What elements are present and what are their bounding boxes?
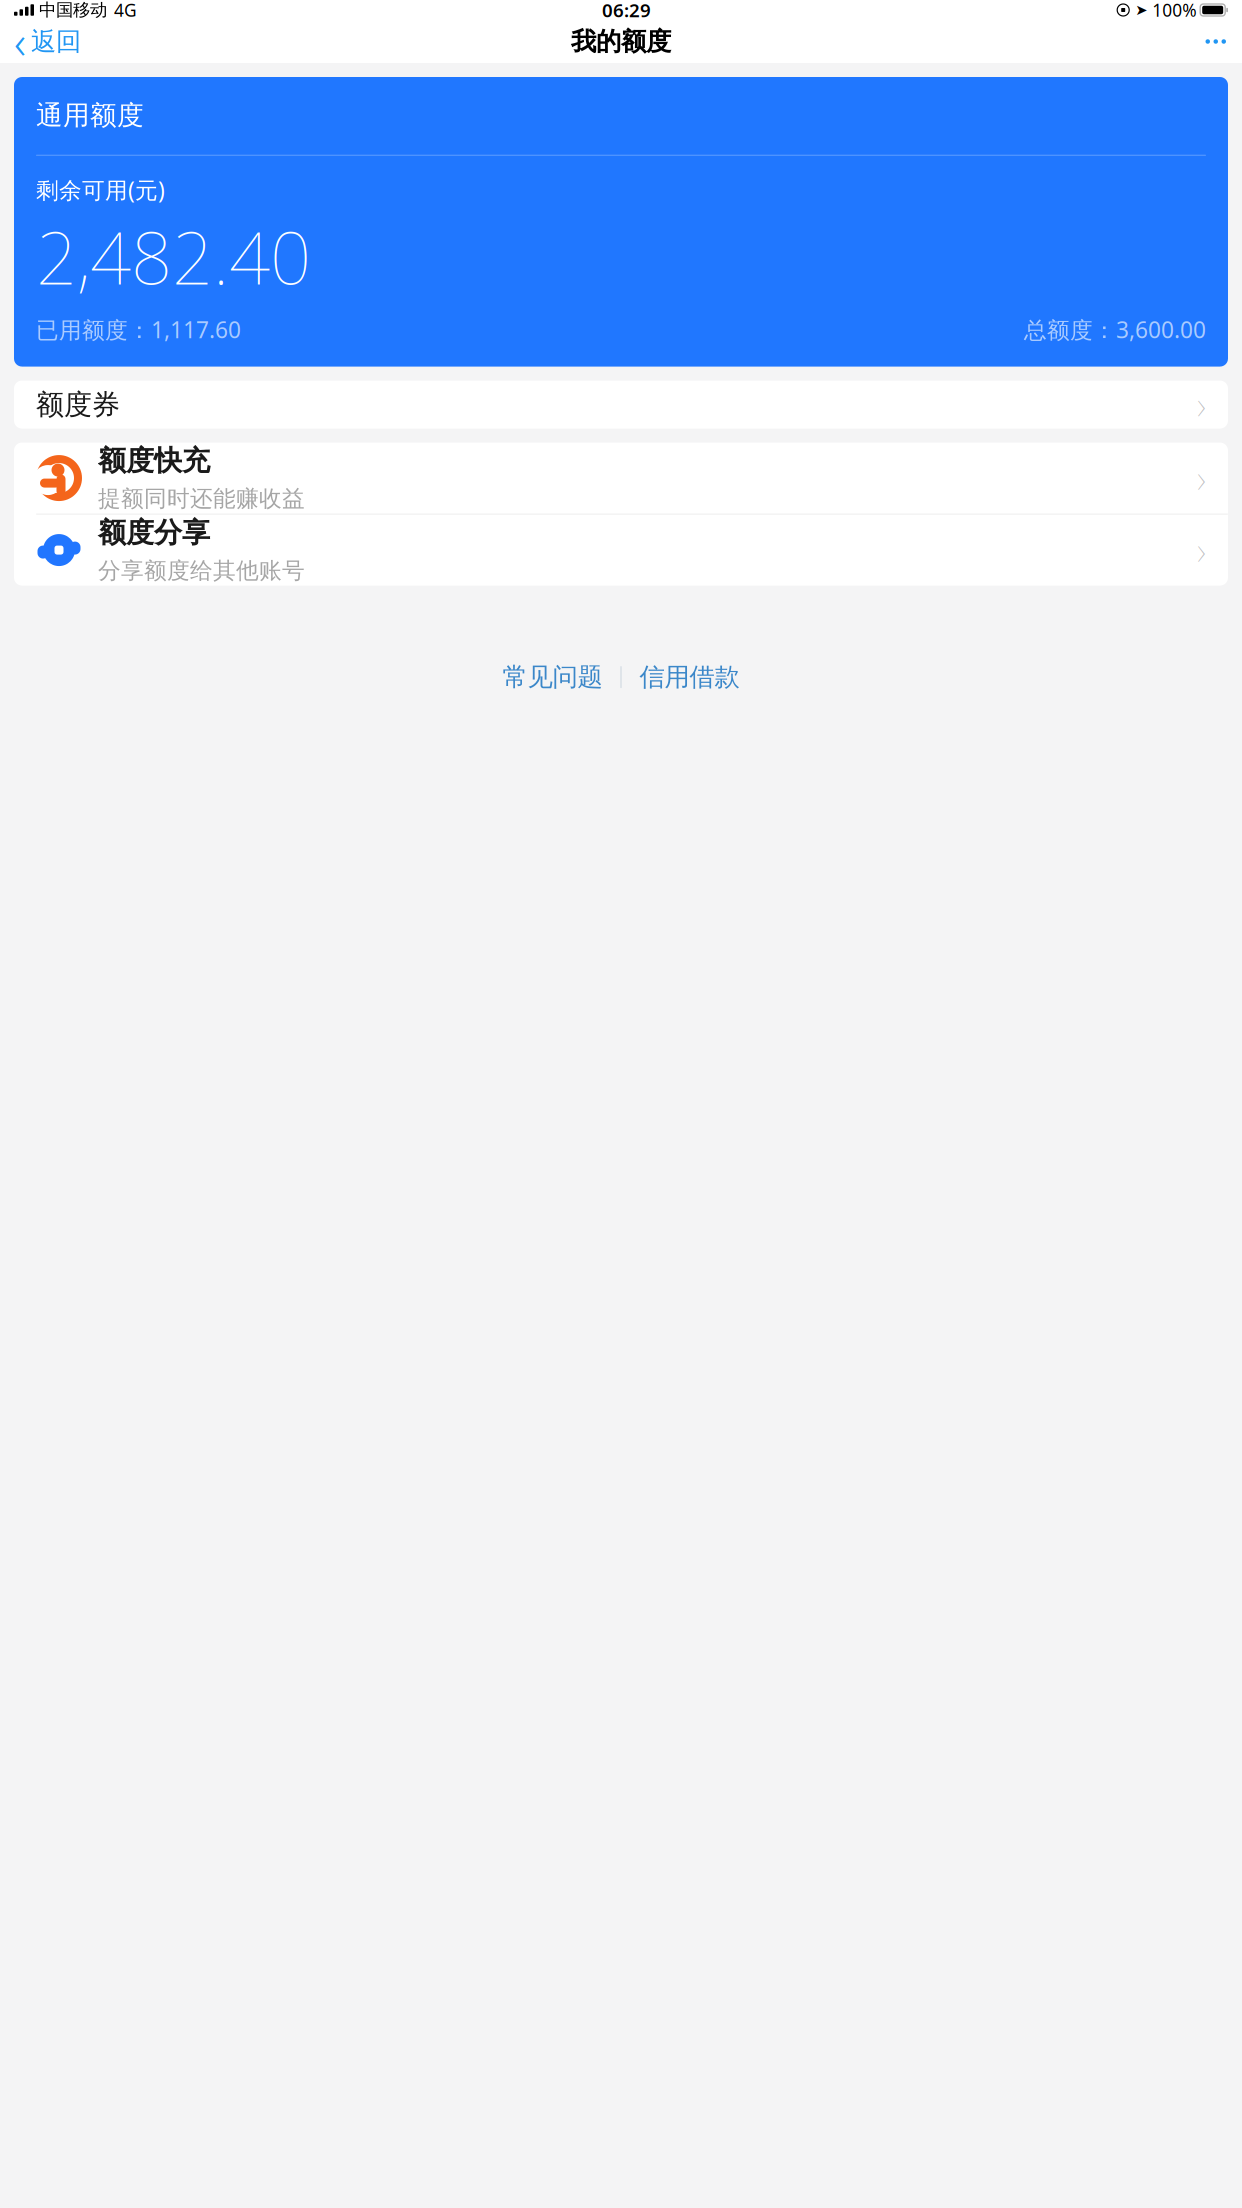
staticText: 通用额度 xyxy=(36,99,144,132)
button[interactable]: ‹ xyxy=(0,19,95,63)
staticText: 100% xyxy=(1152,0,1196,21)
staticText: 中国移动 xyxy=(39,0,107,21)
button[interactable]: 额度快充 xyxy=(14,443,1228,514)
staticText: 总额度：3,600.00 xyxy=(1024,314,1206,345)
staticText: 额度分享 xyxy=(98,515,210,550)
staticText: 提额同时还能赚收益 xyxy=(98,485,305,513)
staticText: 06:29 xyxy=(602,0,651,22)
button[interactable]: 信用借款 xyxy=(629,656,749,699)
button[interactable]: 额度券 xyxy=(14,381,1228,429)
staticText: ‹ xyxy=(14,11,26,72)
button[interactable]: 额度分享 xyxy=(14,515,1228,586)
button[interactable]: More options xyxy=(1189,19,1242,63)
staticText: 4G xyxy=(114,0,137,21)
staticText: 2,482.40 xyxy=(36,209,311,304)
staticText: › xyxy=(1197,523,1206,577)
staticText: › xyxy=(1197,451,1206,505)
staticText: 分享额度给其他账号 xyxy=(98,557,305,585)
staticText: 我的额度 xyxy=(571,26,671,57)
staticText: 已用额度：1,117.60 xyxy=(36,314,241,345)
staticText: 返回 xyxy=(31,26,81,57)
staticText: › xyxy=(1197,378,1206,431)
staticText: 剩余可用(元) xyxy=(36,175,165,205)
button[interactable]: 常见问题 xyxy=(492,656,612,699)
staticText: 额度券 xyxy=(36,387,120,422)
staticText: 常见问题 xyxy=(502,662,602,693)
staticText: 信用借款 xyxy=(639,662,739,693)
staticText: ➤ xyxy=(1135,2,1147,18)
staticText: 额度快充 xyxy=(98,443,210,478)
